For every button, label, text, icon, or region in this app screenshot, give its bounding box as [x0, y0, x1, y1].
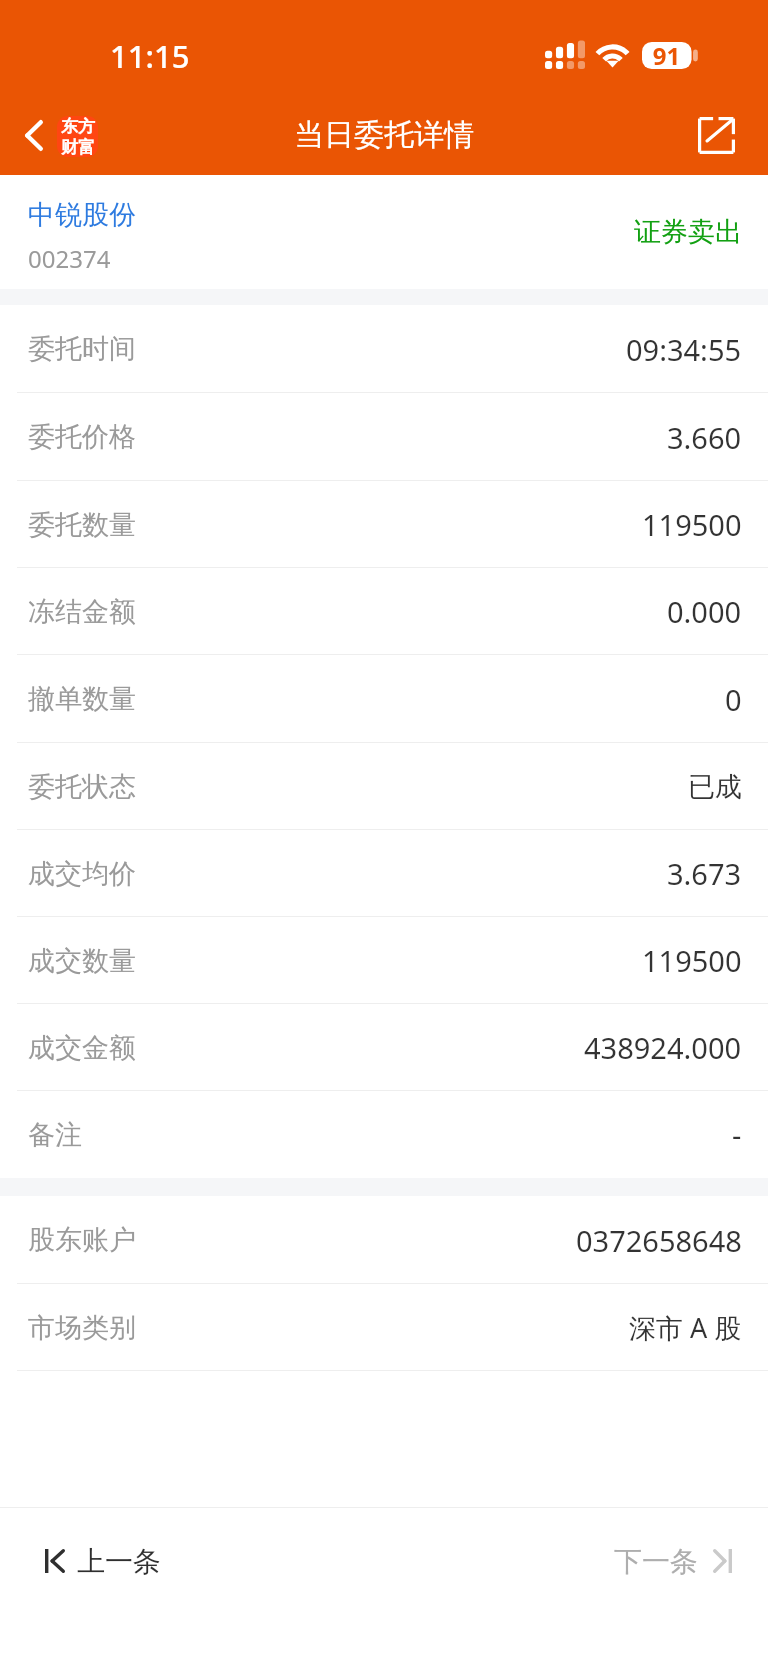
button[interactable]: 下一条: [614, 1527, 732, 1595]
button[interactable]: 市场类别: [0, 1284, 768, 1371]
staticText: 3.673: [667, 854, 742, 893]
staticText: 中锐股份: [28, 198, 136, 232]
staticText: 3.660: [667, 418, 742, 457]
button[interactable]: 冻结金额: [0, 568, 768, 655]
button[interactable]: 撤单数量: [0, 655, 768, 743]
staticText: 438924.000: [584, 1028, 742, 1067]
staticText: 11:15: [110, 35, 190, 77]
staticText: 冻结金额: [28, 595, 136, 629]
staticText: 深市 A 股: [629, 1309, 742, 1346]
button[interactable]: 备注: [0, 1091, 768, 1178]
button[interactable]: 委托时间: [0, 305, 768, 393]
staticText: 成交数量: [28, 944, 136, 978]
staticText: 委托状态: [28, 770, 136, 804]
staticText: 证券卖出: [634, 215, 742, 249]
staticText: 备注: [28, 1118, 82, 1152]
button[interactable]: 委托价格: [0, 393, 768, 481]
button[interactable]: 成交金额: [0, 1004, 768, 1091]
staticText: 当日委托详情: [294, 116, 474, 154]
staticText: 股东账户: [28, 1223, 136, 1257]
staticText: 财富: [61, 137, 95, 157]
staticText: 委托时间: [28, 332, 136, 366]
button[interactable]: Back: [25, 95, 98, 175]
staticText: 下一条: [614, 1544, 698, 1579]
button[interactable]: 中锐股份: [0, 175, 768, 289]
staticText: 撤单数量: [28, 682, 136, 716]
staticText: 成交金额: [28, 1031, 136, 1065]
staticText: 0: [725, 680, 742, 719]
staticText: -: [732, 1115, 742, 1154]
staticText: 已成: [688, 770, 742, 804]
staticText: 002374: [28, 242, 111, 275]
staticText: 0.000: [667, 592, 742, 631]
staticText: 委托价格: [28, 420, 136, 454]
staticText: 东方: [61, 116, 95, 137]
staticText: 上一条: [77, 1544, 161, 1579]
button[interactable]: 成交数量: [0, 917, 768, 1004]
button[interactable]: 委托状态: [0, 743, 768, 830]
staticText: 委托数量: [28, 508, 136, 542]
button[interactable]: 上一条: [45, 1527, 161, 1595]
button[interactable]: 成交均价: [0, 830, 768, 917]
staticText: 0372658648: [576, 1221, 742, 1260]
button[interactable]: Share: [680, 95, 768, 175]
staticText: 市场类别: [28, 1311, 136, 1345]
staticText: 119500: [642, 941, 742, 980]
staticText: 09:34:55: [626, 330, 742, 369]
button[interactable]: 委托数量: [0, 481, 768, 568]
staticText: 91: [642, 39, 691, 72]
button[interactable]: 股东账户: [0, 1196, 768, 1284]
staticText: 成交均价: [28, 857, 136, 891]
staticText: 119500: [642, 505, 742, 544]
